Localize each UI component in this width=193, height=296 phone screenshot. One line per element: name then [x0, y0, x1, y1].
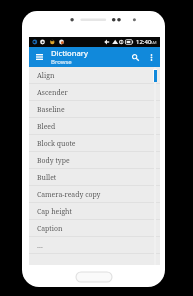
staticText: Baseline: [37, 105, 65, 114]
button[interactable]: Bullet: [29, 169, 160, 186]
button[interactable]: Caption: [29, 220, 160, 237]
button[interactable]: …: [29, 237, 160, 254]
staticText: Block quote: [37, 139, 76, 148]
staticText: Cap height: [37, 207, 72, 216]
staticText: Browse: [51, 58, 72, 66]
staticText: 12:40: [136, 38, 152, 46]
button[interactable]: Open navigation drawer: [30, 47, 49, 67]
button[interactable]: Body type: [29, 152, 160, 169]
staticText: Caption: [37, 224, 63, 233]
staticText: Bleed: [37, 122, 56, 131]
button[interactable]: Align: [29, 67, 160, 84]
staticText: Align: [37, 71, 55, 80]
button[interactable]: More options: [145, 47, 158, 67]
staticText: Camera-ready copy: [37, 190, 101, 199]
button[interactable]: Bleed: [29, 118, 160, 135]
button[interactable]: Baseline: [29, 101, 160, 118]
staticText: Bullet: [37, 173, 57, 182]
staticText: Body type: [37, 156, 70, 165]
button[interactable]: Search: [126, 47, 144, 67]
staticText: AM: [150, 40, 157, 46]
button[interactable]: Block quote: [29, 135, 160, 152]
button[interactable]: Cap height: [29, 203, 160, 220]
button[interactable]: Ascender: [29, 84, 160, 101]
staticText: Dictionary: [51, 48, 88, 58]
staticText: Ascender: [37, 88, 68, 97]
staticText: …: [37, 241, 43, 250]
button[interactable]: Camera-ready copy: [29, 186, 160, 203]
